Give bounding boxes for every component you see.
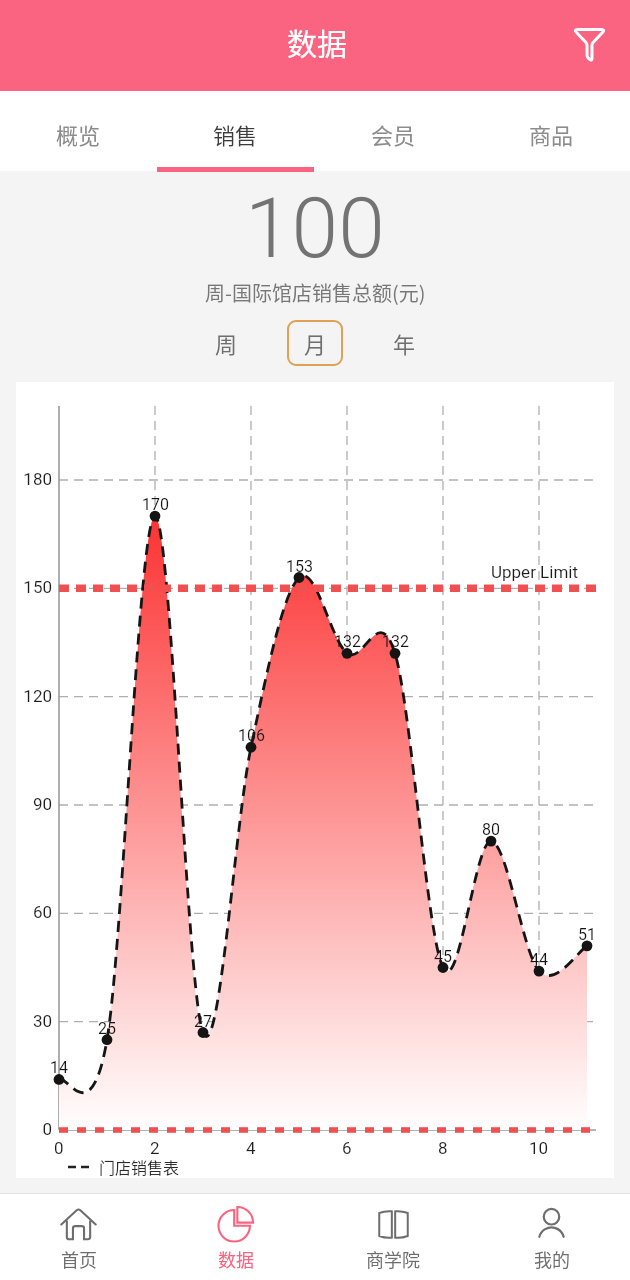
staticText: 0 — [54, 1138, 64, 1158]
staticText: 10 — [529, 1138, 549, 1158]
staticText: 8 — [438, 1138, 448, 1158]
button[interactable]: 会员 — [314, 91, 472, 171]
staticText: 我的 — [534, 1246, 570, 1272]
staticText: 170 — [142, 495, 169, 514]
staticText: 45 — [434, 947, 452, 966]
staticText: 27 — [194, 1012, 212, 1031]
staticText: 30 — [32, 1011, 52, 1031]
staticText: 数据 — [218, 1246, 254, 1272]
button[interactable]: 数据 — [157, 1193, 314, 1280]
staticText: 4 — [246, 1138, 256, 1158]
staticText: 25 — [98, 1019, 116, 1038]
staticText: 会员 — [371, 118, 416, 150]
staticText: 153 — [286, 557, 313, 576]
staticText: 6 — [342, 1138, 352, 1158]
staticText: 132 — [334, 632, 361, 651]
staticText: 51 — [578, 925, 596, 944]
staticText: 销售 — [213, 118, 258, 150]
staticText: 60 — [32, 902, 52, 922]
button[interactable]: 月 — [287, 320, 343, 366]
staticText: 120 — [23, 686, 52, 706]
staticText: 周 — [215, 327, 238, 359]
button[interactable]: Filter — [573, 27, 609, 63]
staticText: 首页 — [61, 1246, 97, 1272]
staticText: 14 — [50, 1058, 68, 1077]
button[interactable]: 商品 — [472, 91, 630, 171]
button[interactable]: 周 — [198, 320, 254, 366]
button[interactable]: 我的 — [472, 1193, 630, 1280]
button[interactable]: 概览 — [0, 91, 157, 171]
staticText: 0 — [42, 1119, 52, 1139]
staticText: 44 — [530, 950, 548, 969]
staticText: 数据 — [287, 20, 347, 63]
button[interactable]: 首页 — [0, 1193, 157, 1280]
staticText: 90 — [32, 794, 52, 814]
staticText: Upper Limit — [491, 562, 579, 582]
staticText: 150 — [23, 577, 52, 597]
staticText: 年 — [393, 327, 416, 359]
staticText: 80 — [482, 820, 500, 839]
staticText: 商品 — [529, 118, 574, 150]
staticText: 106 — [238, 726, 265, 745]
staticText: 周-国际馆店销售总额(元) — [205, 278, 426, 307]
button[interactable]: 商学院 — [314, 1193, 472, 1280]
staticText: 2 — [150, 1138, 160, 1158]
staticText: 100 — [245, 179, 385, 277]
staticText: 180 — [23, 469, 52, 489]
staticText: 月 — [304, 327, 327, 359]
staticText: 商学院 — [366, 1246, 420, 1272]
button[interactable]: 年 — [376, 320, 432, 366]
staticText: 概览 — [56, 118, 101, 150]
button[interactable]: 销售 — [157, 91, 314, 171]
staticText: 门店销售表 — [99, 1155, 180, 1178]
staticText: 132 — [382, 632, 409, 651]
